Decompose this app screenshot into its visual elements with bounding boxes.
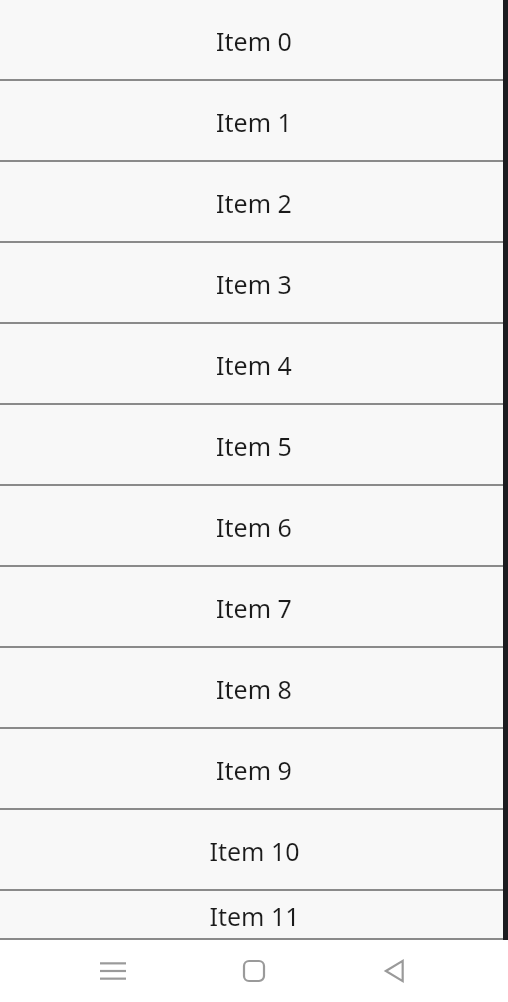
button[interactable]: Item 5	[0, 405, 508, 486]
button[interactable]: Item 11	[0, 891, 508, 940]
button[interactable]: Item 10	[0, 810, 508, 891]
staticText: Item 5	[216, 429, 292, 463]
staticText: Item 8	[216, 672, 292, 706]
button[interactable]: Recents	[85, 943, 141, 999]
button[interactable]: Item 8	[0, 648, 508, 729]
button[interactable]: Item 7	[0, 567, 508, 648]
button[interactable]: Item 0	[0, 0, 508, 81]
button[interactable]: Item 3	[0, 243, 508, 324]
staticText: Item 1	[216, 105, 292, 139]
staticText: Item 4	[216, 348, 292, 382]
staticText: Item 10	[209, 834, 300, 868]
button[interactable]: Item 1	[0, 81, 508, 162]
button[interactable]: Item 2	[0, 162, 508, 243]
staticText: Item 9	[216, 753, 292, 787]
staticText: Item 2	[216, 186, 292, 220]
button[interactable]: Item 9	[0, 729, 508, 810]
staticText: Item 0	[216, 24, 292, 58]
staticText: Item 6	[216, 510, 292, 544]
staticText: Item 11	[209, 899, 300, 933]
button[interactable]: Item 6	[0, 486, 508, 567]
button[interactable]: Back	[367, 943, 423, 999]
button[interactable]: Home	[226, 943, 282, 999]
staticText: Item 3	[216, 267, 292, 301]
button[interactable]: Item 4	[0, 324, 508, 405]
staticText: Item 7	[216, 591, 292, 625]
